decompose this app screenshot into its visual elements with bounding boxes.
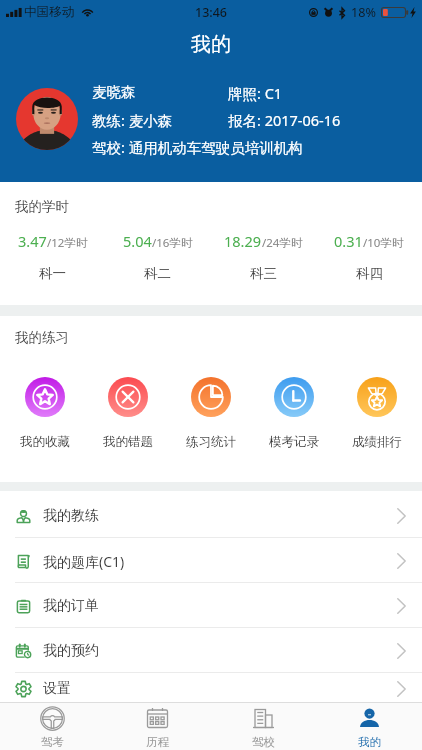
button[interactable]: 我的收藏 [4, 377, 86, 450]
staticText: 成绩排行 [352, 434, 402, 450]
staticText: /16学时 [152, 235, 193, 251]
button[interactable]: 我的预约 [0, 628, 422, 673]
staticText: 我的 [191, 32, 231, 57]
staticText: 驾校: 通用机动车驾驶员培训机构 [92, 137, 303, 157]
staticText: 练习统计 [186, 434, 236, 450]
staticText: 牌照: C1 [228, 83, 283, 103]
staticText: 我的练习 [15, 329, 69, 346]
button[interactable]: 模考记录 [252, 377, 335, 450]
staticText: 驾校 [252, 735, 275, 749]
staticText: 科四 [356, 265, 383, 282]
staticText: 13:46 [195, 4, 228, 21]
staticText: 中国移动 [24, 4, 75, 20]
staticText: 驾考 [41, 735, 64, 749]
button[interactable]: 驾考 [0, 703, 105, 750]
button[interactable]: 驾校 [210, 703, 316, 750]
staticText: 麦晓森 [92, 83, 228, 101]
staticText: 历程 [146, 735, 169, 749]
staticText: 我的教练 [43, 507, 99, 525]
staticText: 我的订单 [43, 597, 99, 615]
staticText: 科三 [250, 265, 277, 282]
staticText: 我的收藏 [20, 434, 70, 450]
staticText: 我的题库(C1) [43, 552, 125, 571]
staticText: 我的预约 [43, 642, 99, 660]
staticText: /10学时 [363, 235, 404, 251]
button[interactable]: 我的订单 [0, 583, 422, 628]
staticText: 我的学时 [15, 198, 69, 215]
staticText: 0.31 [334, 231, 363, 251]
button[interactable]: 设置 [0, 673, 422, 702]
staticText: 18.29 [224, 231, 262, 251]
button[interactable]: 练习统计 [169, 377, 252, 450]
staticText: /12学时 [47, 235, 88, 251]
staticText: /24学时 [262, 235, 303, 251]
staticText: 科二 [144, 265, 171, 282]
staticText: 教练: 麦小森 [92, 110, 228, 130]
staticText: 报名: 2017-06-16 [228, 110, 341, 130]
staticText: 我的 [358, 735, 381, 749]
staticText: 设置 [43, 680, 71, 698]
staticText: 科一 [39, 265, 66, 282]
staticText: 18% [351, 4, 376, 21]
staticText: 模考记录 [269, 434, 319, 450]
button[interactable]: 我的 [316, 703, 422, 750]
staticText: 我的错题 [103, 434, 153, 450]
button[interactable]: 我的教练 [0, 493, 422, 538]
button[interactable]: 成绩排行 [335, 377, 418, 450]
staticText: 3.47 [18, 231, 47, 251]
staticText: 5.04 [123, 231, 152, 251]
button[interactable]: 历程 [105, 703, 210, 750]
button[interactable]: 我的错题 [86, 377, 169, 450]
button[interactable]: 我的题库(C1) [0, 538, 422, 583]
